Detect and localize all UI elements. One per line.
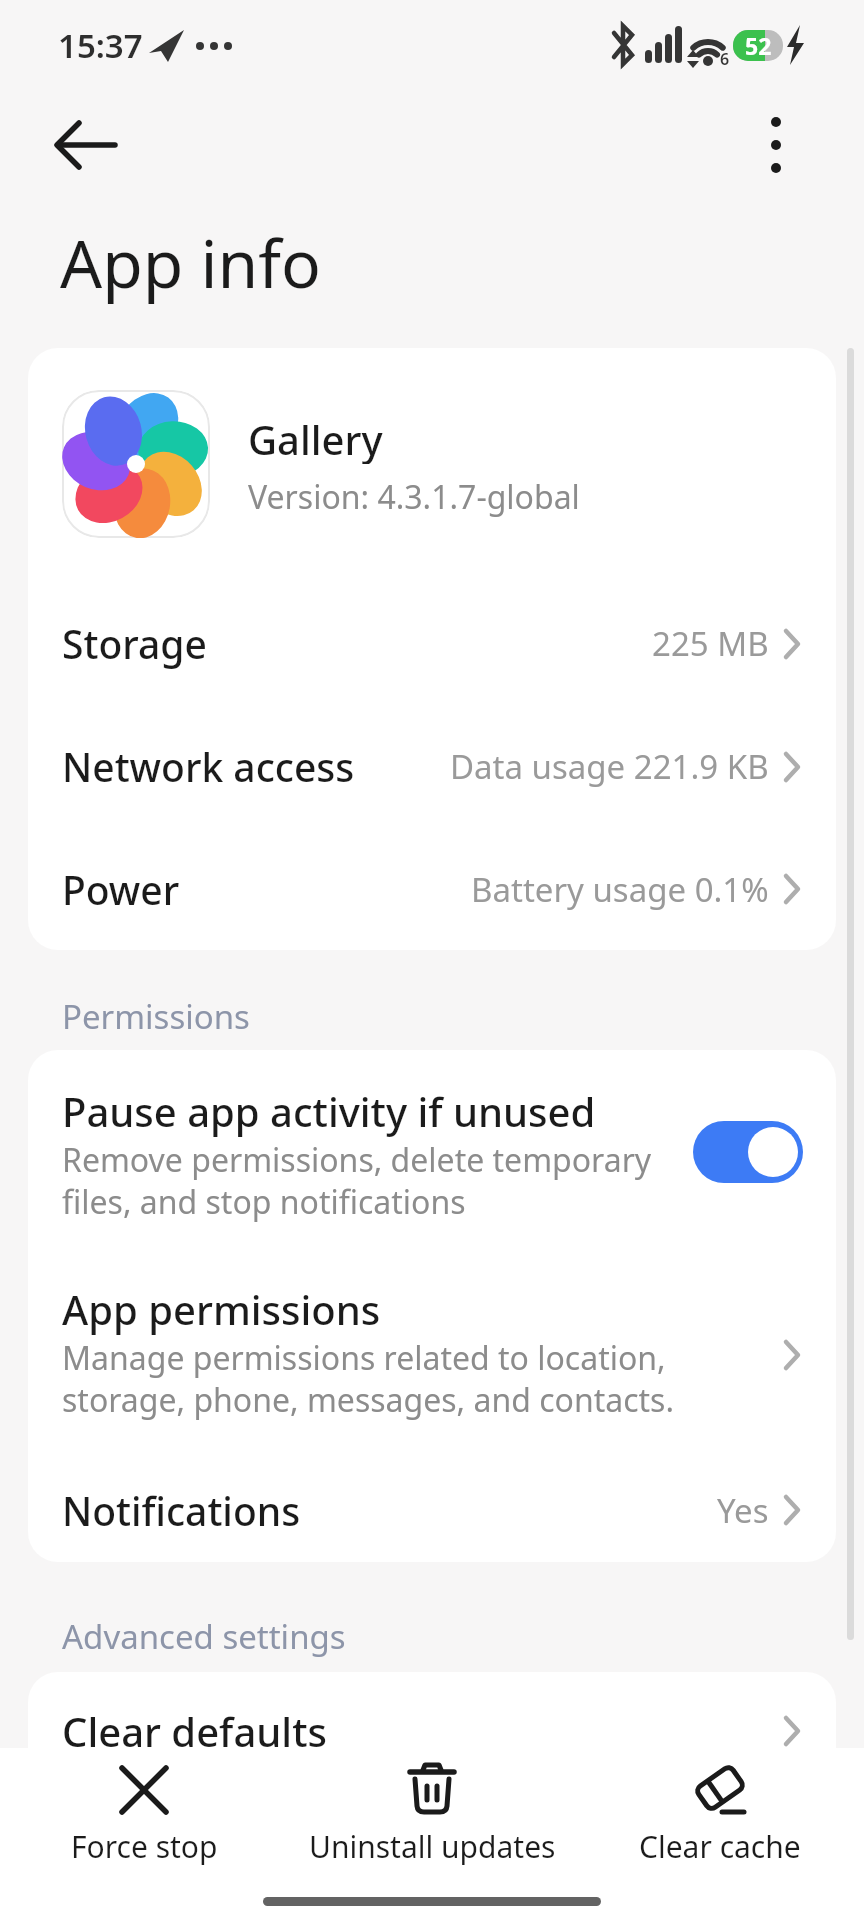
staticText: Network access bbox=[62, 740, 355, 793]
staticText: Data usage 221.9 KB bbox=[450, 744, 769, 789]
staticText: 225 MB bbox=[652, 621, 769, 666]
button[interactable]: Network access bbox=[62, 705, 800, 828]
staticText: Uninstall updates bbox=[309, 1826, 556, 1867]
button[interactable]: Clear cache bbox=[576, 1748, 864, 1920]
staticText: 52 bbox=[745, 30, 772, 61]
staticText: Gallery bbox=[248, 412, 383, 464]
staticText: Battery usage 0.1% bbox=[471, 867, 769, 912]
staticText: Advanced settings bbox=[62, 1614, 346, 1659]
button[interactable] bbox=[693, 1121, 803, 1183]
staticText: Clear cache bbox=[639, 1826, 801, 1867]
staticText: App info bbox=[60, 217, 321, 307]
staticText: Manage permissions related to location, … bbox=[62, 1336, 675, 1421]
staticText: App permissions bbox=[62, 1282, 381, 1336]
staticText: Notifications bbox=[62, 1484, 301, 1537]
staticText: Clear defaults bbox=[62, 1704, 327, 1758]
button[interactable]: Pause app activity if unused bbox=[28, 1050, 836, 1252]
staticText: Power bbox=[62, 863, 180, 916]
staticText: 6 bbox=[720, 48, 730, 68]
button[interactable]: Power bbox=[62, 828, 800, 950]
staticText: Permissions bbox=[62, 994, 250, 1039]
button[interactable]: App permissions bbox=[28, 1252, 836, 1458]
button[interactable]: Force stop bbox=[0, 1748, 288, 1920]
button[interactable]: Uninstall updates bbox=[288, 1748, 576, 1920]
staticText: Remove permissions, delete temporary fil… bbox=[62, 1138, 652, 1223]
staticText: 15:37 bbox=[58, 23, 143, 68]
staticText: Storage bbox=[62, 617, 207, 670]
button[interactable]: Clear defaults bbox=[62, 1672, 800, 1790]
staticText: Pause app activity if unused bbox=[62, 1084, 596, 1138]
button[interactable] bbox=[748, 110, 804, 180]
button[interactable] bbox=[48, 112, 124, 178]
staticText: Yes bbox=[717, 1488, 769, 1533]
staticText: Version: 4.3.1.7-global bbox=[248, 475, 580, 519]
button[interactable]: Notifications bbox=[62, 1458, 800, 1562]
button[interactable]: Storage bbox=[62, 582, 800, 705]
staticText: Force stop bbox=[71, 1826, 218, 1867]
button[interactable] bbox=[62, 390, 210, 538]
